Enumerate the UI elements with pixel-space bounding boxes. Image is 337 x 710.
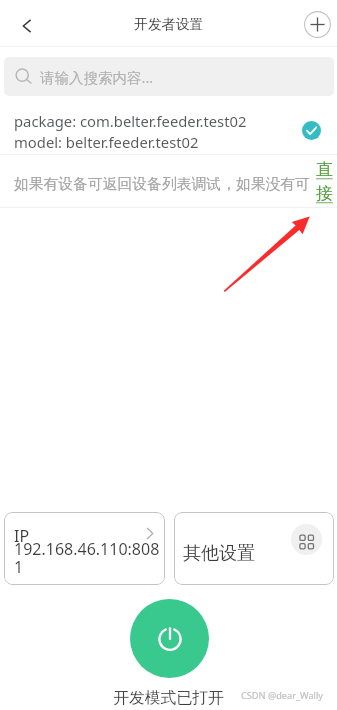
button[interactable]: 请输入搜索内容... bbox=[4, 57, 334, 96]
staticText: 直接 bbox=[316, 159, 335, 204]
staticText: IP bbox=[14, 525, 30, 547]
staticText: model: belter.feeder.test02 bbox=[14, 132, 199, 152]
button[interactable]: Back bbox=[9, 8, 45, 44]
button[interactable]: Add bbox=[304, 11, 331, 38]
staticText: CSDN @dear_Wally bbox=[241, 689, 323, 702]
staticText: 192.168.46.110:8081 bbox=[14, 538, 162, 578]
button[interactable]: package: com.belter.feeder.test02 bbox=[0, 97, 337, 155]
staticText: 开发者设置 bbox=[134, 16, 204, 34]
button[interactable]: 其他设置 bbox=[174, 512, 334, 585]
button[interactable]: 直接 bbox=[316, 159, 335, 204]
button[interactable]: IP bbox=[4, 512, 165, 585]
staticText: 其他设置 bbox=[183, 542, 255, 565]
staticText: 如果有设备可返回设备列表调试，如果没有可 bbox=[14, 175, 310, 194]
button[interactable]: Power toggle bbox=[130, 599, 209, 678]
staticText: 请输入搜索内容... bbox=[40, 67, 154, 87]
staticText: package: com.belter.feeder.test02 bbox=[14, 111, 247, 131]
staticText: 开发模式已打开 bbox=[0, 688, 337, 708]
